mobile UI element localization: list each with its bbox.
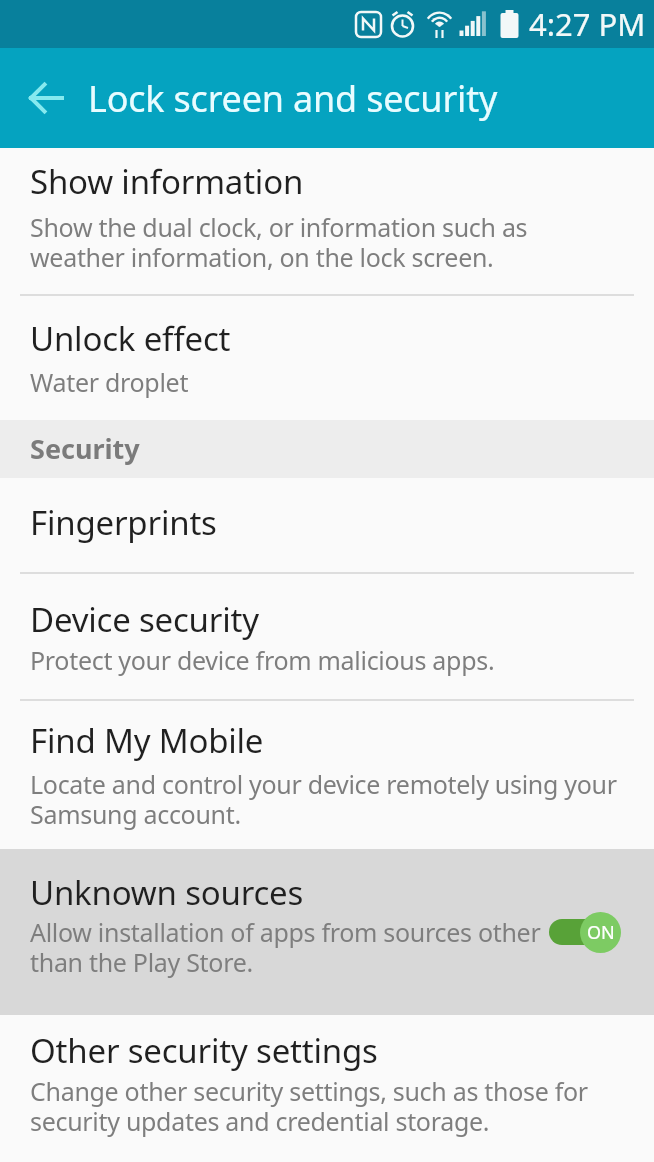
staticText: Lock screen and security: [88, 74, 498, 123]
button[interactable]: Device security: [0, 574, 654, 699]
staticText: Fingerprints: [30, 500, 217, 545]
staticText: Security: [30, 430, 140, 467]
button[interactable]: Unlock effect: [0, 296, 654, 420]
button[interactable]: ON: [549, 910, 621, 954]
staticText: Locate and control your device remotely …: [30, 767, 617, 831]
button[interactable]: [0, 48, 88, 148]
button[interactable]: Fingerprints: [0, 478, 654, 572]
staticText: Find My Mobile: [30, 718, 264, 763]
staticText: Protect your device from malicious apps.: [30, 643, 495, 677]
staticText: Water droplet: [30, 365, 189, 399]
staticText: Other security settings: [30, 1028, 378, 1073]
staticText: Show the dual clock, or information such…: [30, 210, 528, 274]
button[interactable]: Other security settings: [0, 1015, 654, 1162]
staticText: ON: [587, 920, 615, 945]
staticText: Allow installation of apps from sources …: [30, 915, 541, 979]
button[interactable]: Unknown sources: [0, 849, 654, 1015]
button[interactable]: Find My Mobile: [0, 701, 654, 849]
staticText: Show information: [30, 159, 304, 204]
button[interactable]: Show information: [0, 148, 654, 294]
staticText: 4:27 PM: [529, 3, 646, 45]
staticText: Device security: [30, 597, 259, 642]
staticText: Unknown sources: [30, 870, 304, 915]
staticText: Unlock effect: [30, 316, 231, 361]
staticText: Change other security settings, such as …: [30, 1074, 588, 1138]
